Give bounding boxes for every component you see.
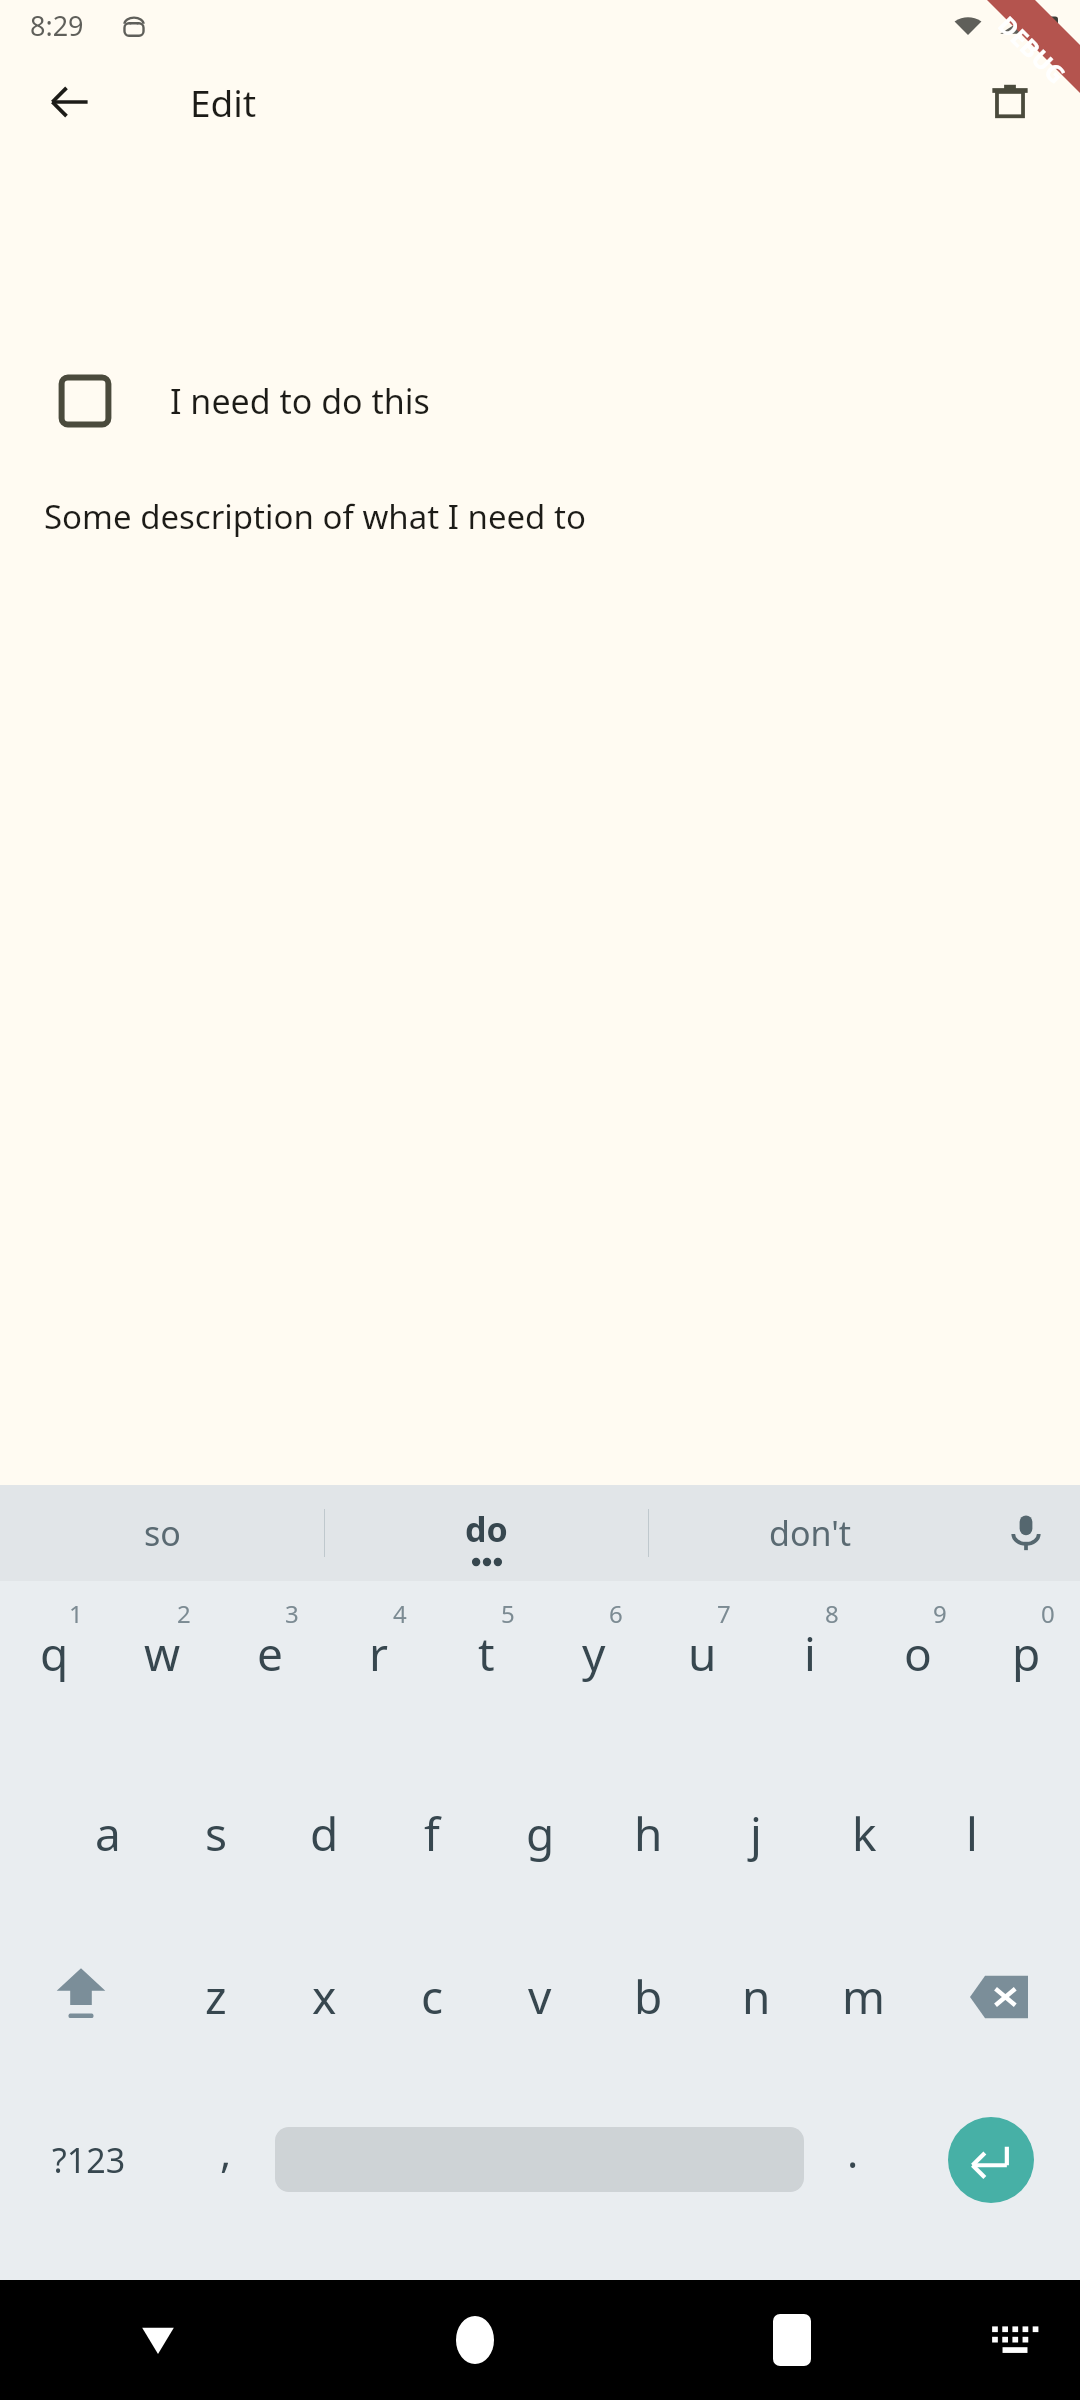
button[interactable]: Voice input (972, 1485, 1080, 1581)
button[interactable]: x (270, 1915, 378, 2078)
staticText: c (421, 1965, 444, 2028)
button[interactable]: . (804, 2078, 902, 2241)
staticText: 4 (393, 1597, 407, 1630)
staticText: 2 (177, 1597, 191, 1630)
staticText: h (634, 1802, 663, 1865)
button[interactable]: l (918, 1752, 1026, 1915)
staticText: l (966, 1802, 978, 1865)
staticText: do (465, 1506, 508, 1552)
button[interactable]: 1 (0, 1589, 108, 1752)
button[interactable]: Back (26, 58, 114, 146)
button[interactable]: , (177, 2078, 275, 2241)
button[interactable]: 9 (864, 1589, 972, 1752)
staticText: don't (769, 1510, 852, 1556)
staticText: e (257, 1622, 283, 1685)
staticText: 8 (825, 1597, 839, 1630)
button[interactable]: a (54, 1752, 162, 1915)
button[interactable]: g (486, 1752, 594, 1915)
button[interactable]: n (702, 1915, 810, 2078)
staticText: ?123 (52, 2137, 126, 2183)
staticText: 1 (69, 1597, 83, 1630)
staticText: 5 (501, 1597, 515, 1630)
button[interactable]: 4 (324, 1589, 432, 1752)
button[interactable]: m (810, 1915, 918, 2078)
button[interactable]: c (378, 1915, 486, 2078)
button[interactable]: Shift (0, 1915, 162, 2078)
button[interactable]: k (810, 1752, 918, 1915)
staticText: 0 (1041, 1597, 1055, 1630)
button[interactable]: v (486, 1915, 594, 2078)
staticText: so (144, 1510, 181, 1556)
staticText: DEBUG (991, 8, 1073, 90)
staticText: 9 (933, 1597, 947, 1630)
staticText: u (688, 1622, 717, 1685)
button[interactable]: Back (0, 2280, 316, 2400)
staticText: f (424, 1802, 440, 1865)
staticText: m (842, 1965, 886, 2028)
button[interactable]: 2 (108, 1589, 216, 1752)
button[interactable]: d (270, 1752, 378, 1915)
staticText: g (526, 1802, 555, 1865)
button[interactable]: 8 (756, 1589, 864, 1752)
staticText: b (634, 1965, 663, 2028)
button[interactable]: Switch keyboard (950, 2280, 1080, 2400)
staticText: i (804, 1622, 816, 1685)
staticText: k (852, 1802, 877, 1865)
staticText: Some description of what I need to (44, 494, 595, 539)
staticText: n (742, 1965, 771, 2028)
staticText: a (95, 1802, 121, 1865)
staticText: . (847, 2123, 859, 2180)
button[interactable]: j (702, 1752, 810, 1915)
button[interactable]: I need to do this (0, 346, 1080, 456)
button[interactable]: 3 (216, 1589, 324, 1752)
staticText: 6 (609, 1597, 623, 1630)
staticText: j (750, 1802, 762, 1865)
staticText: 7 (717, 1597, 731, 1630)
staticText: z (205, 1965, 227, 2028)
staticText: w (144, 1622, 181, 1685)
button[interactable]: s (162, 1752, 270, 1915)
button[interactable]: 7 (648, 1589, 756, 1752)
button[interactable]: Enter (948, 2117, 1034, 2203)
staticText: p (1012, 1622, 1041, 1685)
staticText: t (478, 1622, 495, 1685)
staticText: , (220, 2123, 232, 2180)
button[interactable]: don't (649, 1485, 972, 1581)
button[interactable]: 0 (972, 1589, 1080, 1752)
button[interactable]: so (0, 1485, 324, 1581)
staticText: 3 (285, 1597, 299, 1630)
button[interactable]: Backspace (918, 1915, 1080, 2078)
staticText: Edit (190, 77, 257, 127)
staticText: 8:29 (30, 7, 84, 44)
staticText: x (312, 1965, 337, 2028)
staticText: q (40, 1622, 69, 1685)
staticText: s (205, 1802, 228, 1865)
button[interactable]: do (325, 1485, 648, 1581)
button[interactable]: 5 (432, 1589, 540, 1752)
staticText: d (310, 1802, 339, 1865)
staticText: I need to do this (170, 378, 430, 424)
staticText: o (904, 1622, 932, 1685)
button[interactable]: Home (316, 2280, 633, 2400)
button[interactable]: b (594, 1915, 702, 2078)
button[interactable]: Recent apps (633, 2280, 950, 2400)
button[interactable]: Delete (966, 58, 1054, 146)
button[interactable]: z (162, 1915, 270, 2078)
button[interactable]: f (378, 1752, 486, 1915)
staticText: y (582, 1622, 606, 1685)
staticText: r (369, 1622, 388, 1685)
button[interactable]: 6 (540, 1589, 648, 1752)
staticText: v (528, 1965, 552, 2028)
button[interactable]: ?123 (0, 2078, 177, 2241)
button[interactable]: h (594, 1752, 702, 1915)
